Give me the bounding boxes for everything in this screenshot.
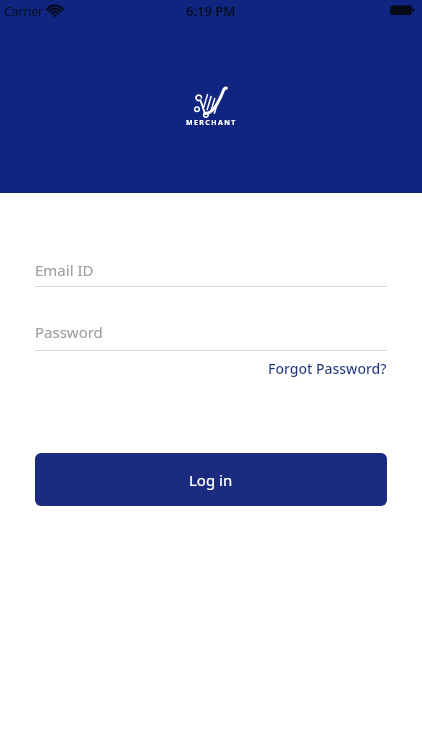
staticText: Carrier (4, 3, 44, 19)
button[interactable]: Email ID (35, 260, 387, 280)
button[interactable]: Log in (35, 453, 387, 506)
staticText: Forgot Password? (268, 359, 387, 378)
staticText: 6:19 PM (186, 2, 236, 20)
staticText: Email ID (35, 260, 94, 280)
staticText: Log in (189, 470, 233, 490)
staticText: Password (35, 322, 103, 342)
button[interactable]: Forgot Password? (268, 359, 387, 378)
button[interactable]: Password (35, 322, 387, 342)
staticText: MERCHANT (186, 118, 237, 128)
